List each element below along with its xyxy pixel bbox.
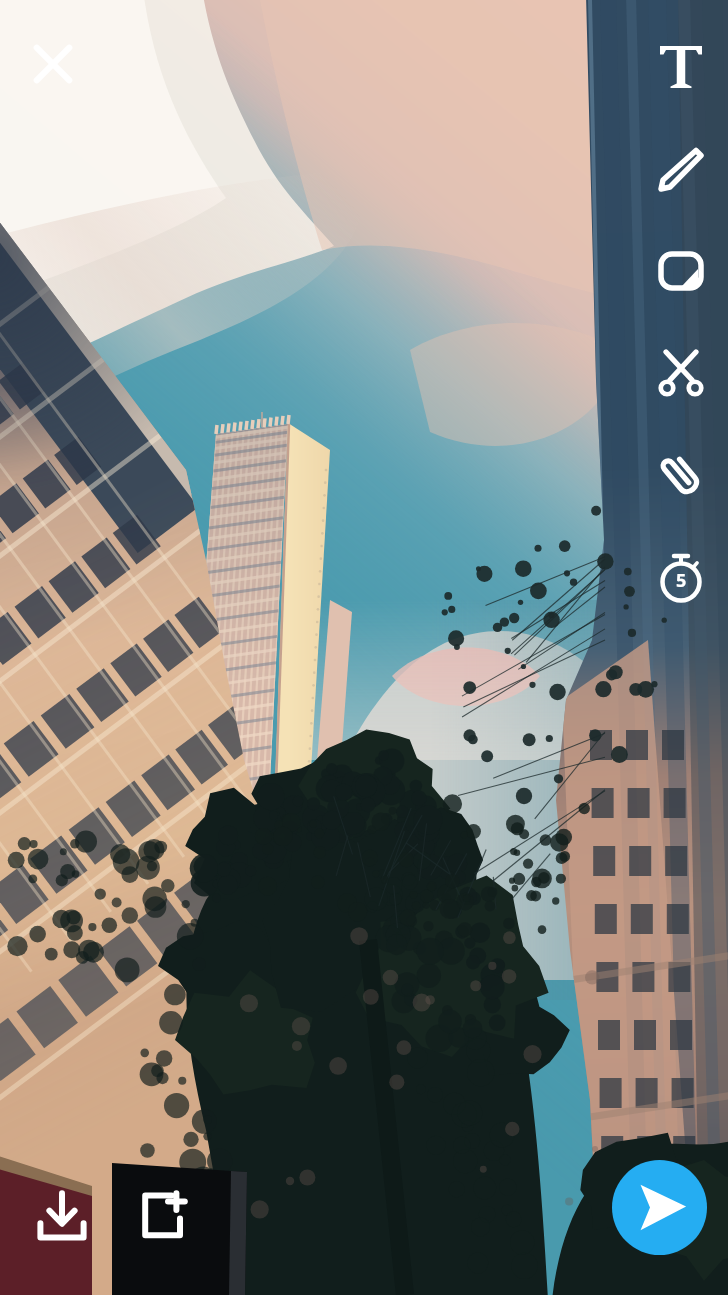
staticText: 5: [676, 568, 687, 593]
button[interactable]: Text: [634, 16, 728, 118]
button[interactable]: Close: [25, 36, 81, 92]
button[interactable]: Draw: [634, 118, 728, 220]
button[interactable]: Attach link: [634, 424, 728, 526]
button[interactable]: Add to story: [132, 1186, 192, 1246]
button[interactable]: Sticker: [634, 220, 728, 322]
button[interactable]: Send: [612, 1160, 707, 1255]
button[interactable]: Timer: [634, 526, 728, 628]
button[interactable]: Save: [32, 1186, 92, 1246]
button[interactable]: Scissors: [634, 322, 728, 424]
